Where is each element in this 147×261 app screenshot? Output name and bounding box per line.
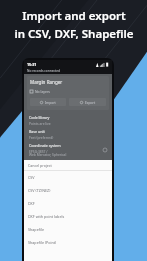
- staticText: Cancel project: [28, 163, 52, 168]
- button[interactable]: Edit coordinate system: [102, 147, 108, 153]
- staticText: Code library: [29, 115, 50, 120]
- button[interactable]: Shapefile (Point): [24, 236, 112, 249]
- staticText: Margin Ranger: [30, 79, 63, 85]
- button[interactable]: Code library: [24, 112, 112, 126]
- button[interactable]: Export: [69, 98, 106, 106]
- staticText: No layers: [35, 89, 50, 94]
- staticText: No records connected: [27, 69, 60, 73]
- button[interactable]: CSV (TZ/NEZ): [24, 184, 112, 197]
- button[interactable]: Base unit: [24, 126, 112, 140]
- button[interactable]: Import: [30, 98, 66, 106]
- staticText: Points are live: [29, 121, 51, 125]
- staticText: CSV: [28, 175, 35, 180]
- staticText: Base unit: [29, 129, 45, 134]
- staticText: Shapefile (Point): [28, 240, 57, 245]
- button[interactable]: Cancel project: [24, 160, 112, 170]
- staticText: DXF with point labels: [28, 214, 65, 219]
- staticText: Import and export: [22, 8, 126, 24]
- staticText: Feet (preferred): [29, 135, 54, 139]
- staticText: Coordinate system: [29, 143, 61, 148]
- staticText: 15:31: [27, 62, 37, 67]
- staticText: Import: [45, 100, 56, 104]
- button[interactable]: DXF with point labels: [24, 210, 112, 223]
- staticText: EPSG:3857 / Web Mercator, Spherical: [29, 149, 67, 157]
- button[interactable]: Coordinate system: [24, 140, 112, 159]
- button[interactable]: DXF: [24, 197, 112, 210]
- staticText: CSV (TZ/NEZ): [28, 188, 51, 193]
- staticText: in CSV, DXF, Shapefile: [14, 26, 134, 42]
- button[interactable]: CSV: [24, 171, 112, 184]
- staticText: Export: [85, 100, 96, 104]
- staticText: DXF: [28, 201, 35, 206]
- staticText: Shapefile: [28, 227, 44, 232]
- button[interactable]: Shapefile: [24, 223, 112, 236]
